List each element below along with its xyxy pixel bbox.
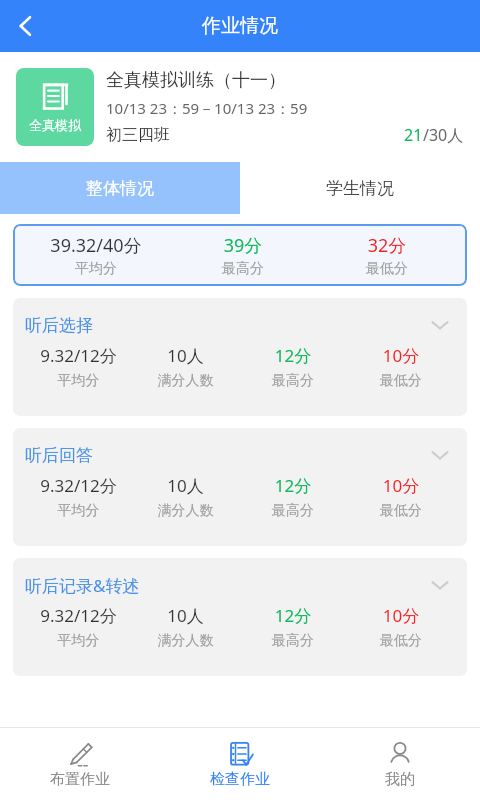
staticText: 最低分 xyxy=(347,632,455,650)
staticText: 满分人数 xyxy=(132,632,239,650)
staticText: 9.32/12分 xyxy=(25,604,132,627)
staticText: 听后记录&转述 xyxy=(25,574,140,597)
staticText: 39分 xyxy=(171,233,315,258)
button[interactable]: 学生情况 xyxy=(240,162,480,214)
staticText: 整体情况 xyxy=(86,178,154,199)
staticText: 10人 xyxy=(132,474,239,497)
staticText: 最低分 xyxy=(315,260,459,278)
staticText: 全真模拟 xyxy=(29,117,81,133)
staticText: 我的 xyxy=(385,770,415,789)
staticText: 最高分 xyxy=(171,260,315,278)
staticText: 平均分 xyxy=(25,632,132,650)
button[interactable]: 听后回答 xyxy=(13,428,467,546)
button[interactable]: 布置作业 xyxy=(0,728,160,800)
staticText: 10/13 23：59－10/13 23：59 xyxy=(106,98,308,118)
staticText: 满分人数 xyxy=(132,502,239,520)
staticText: 10分 xyxy=(347,474,455,497)
staticText: 听后选择 xyxy=(25,315,93,336)
staticText: 10分 xyxy=(347,604,455,627)
other: Expand xyxy=(425,310,455,340)
button[interactable]: 我的 xyxy=(320,728,480,800)
staticText: 21 xyxy=(404,124,423,146)
staticText: 布置作业 xyxy=(50,770,110,789)
staticText: 最低分 xyxy=(347,372,455,390)
staticText: 学生情况 xyxy=(326,178,394,199)
button[interactable]: 全真模拟 xyxy=(16,68,94,146)
staticText: 检查作业 xyxy=(210,770,270,789)
staticText: 10分 xyxy=(347,344,455,367)
staticText: 12分 xyxy=(239,604,347,627)
staticText: 听后回答 xyxy=(25,445,93,466)
staticText: /30人 xyxy=(423,124,464,146)
button[interactable]: 听后选择 xyxy=(13,298,467,416)
staticText: 9.32/12分 xyxy=(25,344,132,367)
staticText: 平均分 xyxy=(21,260,171,278)
staticText: 32分 xyxy=(315,233,459,258)
staticText: 10人 xyxy=(132,604,239,627)
staticText: 初三四班 xyxy=(106,125,170,145)
staticText: 最低分 xyxy=(347,502,455,520)
staticText: 全真模拟训练（十一） xyxy=(106,69,286,92)
staticText: 12分 xyxy=(239,344,347,367)
staticText: 最高分 xyxy=(239,632,347,650)
button[interactable]: Back xyxy=(0,0,52,52)
staticText: 平均分 xyxy=(25,502,132,520)
staticText: 满分人数 xyxy=(132,372,239,390)
staticText: 10人 xyxy=(132,344,239,367)
staticText: 最高分 xyxy=(239,372,347,390)
other: Expand xyxy=(425,570,455,600)
staticText: 39.32/40分 xyxy=(21,233,171,258)
button[interactable]: 听后记录&转述 xyxy=(13,558,467,676)
staticText: 最高分 xyxy=(239,502,347,520)
staticText: 9.32/12分 xyxy=(25,474,132,497)
staticText: 12分 xyxy=(239,474,347,497)
button[interactable]: 39.32/40分 xyxy=(13,224,467,286)
staticText: 作业情况 xyxy=(202,14,278,38)
button[interactable]: 检查作业 xyxy=(160,728,320,800)
staticText: 平均分 xyxy=(25,372,132,390)
other: Expand xyxy=(425,440,455,470)
button[interactable]: 整体情况 xyxy=(0,162,240,214)
